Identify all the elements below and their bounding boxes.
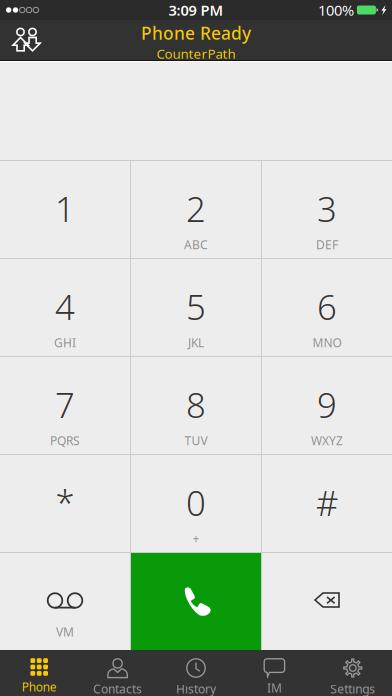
button[interactable]: 4 bbox=[0, 259, 130, 356]
button[interactable]: Call bbox=[131, 553, 261, 650]
staticText: 3 bbox=[317, 185, 337, 231]
button[interactable]: 9 bbox=[262, 357, 392, 454]
staticText: WXYZ bbox=[311, 433, 343, 448]
button[interactable]: 2 bbox=[131, 161, 261, 258]
staticText: 0 bbox=[186, 479, 206, 525]
button[interactable]: IM bbox=[235, 650, 314, 696]
staticText: Phone bbox=[22, 679, 57, 695]
staticText: Phone Ready bbox=[141, 22, 251, 45]
staticText: 6 bbox=[317, 283, 337, 329]
staticText: Contacts bbox=[93, 681, 142, 696]
staticText: CounterPath bbox=[156, 45, 235, 62]
staticText: + bbox=[192, 531, 199, 546]
button[interactable]: Phone bbox=[0, 650, 78, 696]
staticText: TUV bbox=[184, 433, 207, 448]
staticText: 7 bbox=[55, 381, 75, 427]
button[interactable]: Transfer bbox=[0, 19, 52, 61]
staticText: 2 bbox=[186, 185, 206, 231]
staticText: # bbox=[316, 479, 338, 525]
staticText: History bbox=[176, 681, 216, 696]
staticText: 4 bbox=[55, 283, 75, 329]
button[interactable]: 3 bbox=[262, 161, 392, 258]
staticText: Settings bbox=[330, 681, 375, 696]
staticText: 3:09 PM bbox=[168, 0, 223, 20]
staticText: GHI bbox=[54, 335, 76, 350]
button[interactable]: Delete bbox=[262, 553, 392, 650]
staticText: JKL bbox=[188, 335, 204, 350]
staticText: DEF bbox=[316, 237, 338, 252]
staticText: ABC bbox=[184, 237, 208, 252]
staticText: 5 bbox=[186, 283, 206, 329]
button[interactable]: 0 bbox=[131, 455, 261, 552]
button[interactable]: # bbox=[262, 455, 392, 552]
button[interactable]: 5 bbox=[131, 259, 261, 356]
staticText: 8 bbox=[186, 381, 206, 427]
button[interactable]: 8 bbox=[131, 357, 261, 454]
staticText: PQRS bbox=[50, 433, 80, 448]
staticText: 1 bbox=[55, 185, 75, 231]
button[interactable]: 7 bbox=[0, 357, 130, 454]
button[interactable]: Voicemail bbox=[0, 553, 130, 650]
button[interactable]: History bbox=[157, 650, 235, 696]
staticText: VM bbox=[56, 624, 74, 640]
button[interactable]: 1 bbox=[0, 161, 130, 258]
button[interactable]: * bbox=[0, 455, 130, 552]
button[interactable]: Contacts bbox=[78, 650, 157, 696]
staticText: * bbox=[55, 479, 74, 525]
staticText: 9 bbox=[317, 381, 337, 427]
staticText: MNO bbox=[312, 335, 341, 350]
button[interactable]: Settings bbox=[314, 650, 392, 696]
button[interactable]: 6 bbox=[262, 259, 392, 356]
staticText: IM bbox=[267, 680, 282, 696]
staticText: 100% bbox=[318, 0, 354, 20]
